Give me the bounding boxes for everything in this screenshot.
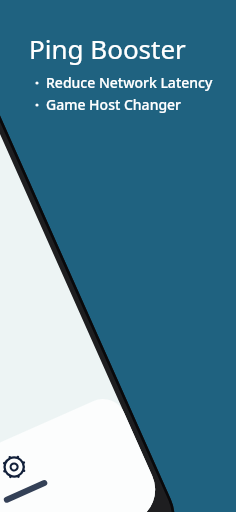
staticText: Game Host Changer [46, 95, 182, 114]
button[interactable]: Setting [55, 342, 101, 376]
staticText: Reduce Network Latency [46, 73, 213, 92]
staticText: Ping Booster [29, 31, 186, 66]
